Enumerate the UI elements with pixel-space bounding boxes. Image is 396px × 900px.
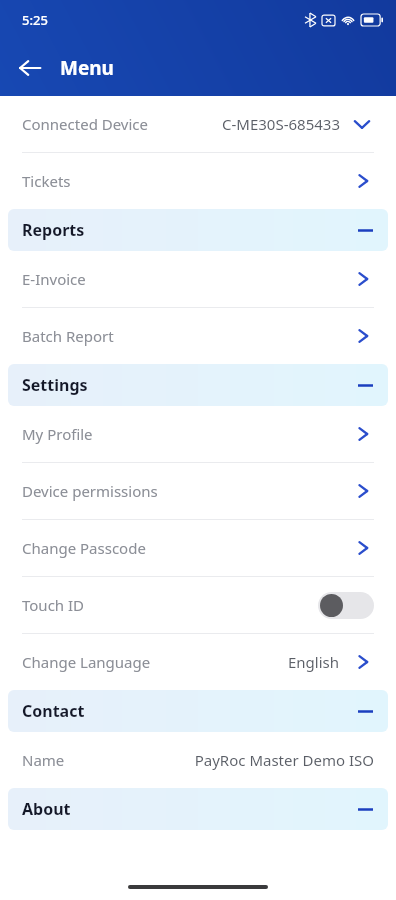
- button[interactable]: Contact: [8, 690, 388, 732]
- button[interactable]: Back: [8, 46, 52, 90]
- button[interactable]: My Profile: [0, 406, 396, 462]
- staticText: Name: [22, 750, 65, 770]
- staticText: Reports: [22, 219, 85, 241]
- button[interactable]: Name: [0, 732, 396, 788]
- staticText: E-Invoice: [22, 269, 86, 289]
- staticText: Menu: [60, 55, 114, 81]
- staticText: C-ME30S-685433: [222, 114, 340, 134]
- staticText: PayRoc Master Demo ISO: [194, 750, 374, 770]
- staticText: Tickets: [22, 171, 71, 191]
- staticText: Change Passcode: [22, 538, 146, 558]
- button[interactable]: Touch ID toggle, off: [318, 592, 374, 619]
- staticText: About: [22, 798, 71, 820]
- button[interactable]: Reports: [8, 209, 388, 251]
- other: Collapse Contact: [354, 700, 376, 722]
- staticText: English: [288, 652, 340, 672]
- button[interactable]: About: [8, 788, 388, 830]
- button[interactable]: Tickets: [0, 153, 396, 209]
- button[interactable]: Settings: [8, 364, 388, 406]
- staticText: Touch ID: [22, 595, 85, 615]
- button[interactable]: E-Invoice: [0, 251, 396, 307]
- button[interactable]: Device permissions: [0, 463, 396, 519]
- staticText: Batch Report: [22, 326, 114, 346]
- staticText: Change Language: [22, 652, 151, 672]
- other: Collapse About: [354, 798, 376, 820]
- button[interactable]: Touch ID: [0, 577, 396, 633]
- staticText: My Profile: [22, 424, 93, 444]
- staticText: Contact: [22, 700, 85, 722]
- other: Collapse Settings: [354, 374, 376, 396]
- staticText: Device permissions: [22, 481, 158, 501]
- staticText: Connected Device: [22, 114, 149, 134]
- button[interactable]: Batch Report: [0, 308, 396, 364]
- staticText: 5:25: [22, 11, 48, 29]
- other: Collapse Reports: [354, 219, 376, 241]
- button[interactable]: Change Passcode: [0, 520, 396, 576]
- button[interactable]: Connected Device: [0, 96, 396, 152]
- button[interactable]: Change Language: [0, 634, 396, 690]
- staticText: Settings: [22, 374, 88, 396]
